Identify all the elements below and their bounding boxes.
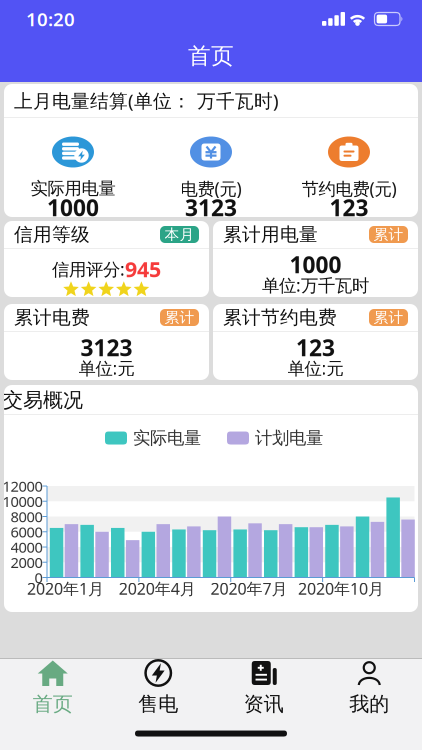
staticText: 累计电费 — [14, 306, 90, 329]
staticText: 资讯 — [244, 692, 284, 716]
staticText: 累计 — [373, 225, 403, 243]
staticText: 单位:元 — [78, 356, 134, 379]
staticText: 单位:万千瓦时 — [262, 273, 369, 296]
staticText: 上月电量结算(单位： 万千瓦时) — [14, 88, 279, 113]
button[interactable]: 首页 — [0, 659, 105, 721]
button[interactable]: 我的 — [316, 659, 422, 721]
staticText: 信用等级 — [14, 223, 90, 246]
staticText: 1000 — [47, 192, 99, 222]
staticText: 6000 — [10, 522, 42, 541]
staticText: 累计节约电费 — [223, 306, 337, 329]
staticText: 2020年4月 — [119, 578, 196, 599]
staticText: 累计 — [164, 308, 194, 326]
staticText: 累计 — [373, 308, 403, 326]
staticText: 售电 — [138, 692, 178, 716]
staticText: 10000 — [2, 491, 42, 511]
staticText: 累计用电量 — [223, 223, 318, 246]
staticText: 单位:元 — [287, 356, 343, 379]
staticText: 8000 — [10, 507, 42, 526]
staticText: 我的 — [349, 692, 389, 716]
staticText: 0 — [34, 568, 42, 587]
staticText: 945 — [125, 255, 161, 283]
staticText: 3123 — [185, 192, 237, 222]
staticText: 2020年10月 — [298, 578, 384, 599]
staticText: 12000 — [2, 476, 42, 496]
staticText: 节约电费(元) — [301, 177, 396, 200]
staticText: 本月 — [164, 225, 194, 243]
staticText: 1000 — [289, 249, 341, 279]
staticText: 2000 — [10, 552, 42, 572]
staticText: 123 — [329, 192, 368, 222]
staticText: 2020年1月 — [27, 578, 104, 599]
staticText: 实际电量 — [133, 427, 201, 449]
staticText: 首页 — [33, 692, 73, 716]
staticText: 实际用电量 — [30, 178, 115, 199]
staticText: 4000 — [10, 537, 42, 557]
staticText: 2020年7月 — [211, 578, 288, 599]
staticText: 首页 — [188, 42, 234, 70]
staticText: 交易概况 — [3, 388, 83, 412]
staticText: 电费(元) — [180, 177, 241, 200]
staticText: 123 — [296, 332, 335, 362]
staticText: 10:20 — [26, 7, 75, 31]
staticText: 信用评分: — [52, 257, 125, 280]
button[interactable]: 资讯 — [211, 659, 316, 721]
staticText: 计划电量 — [255, 427, 323, 449]
staticText: 3123 — [80, 332, 132, 362]
button[interactable]: 售电 — [105, 659, 211, 721]
